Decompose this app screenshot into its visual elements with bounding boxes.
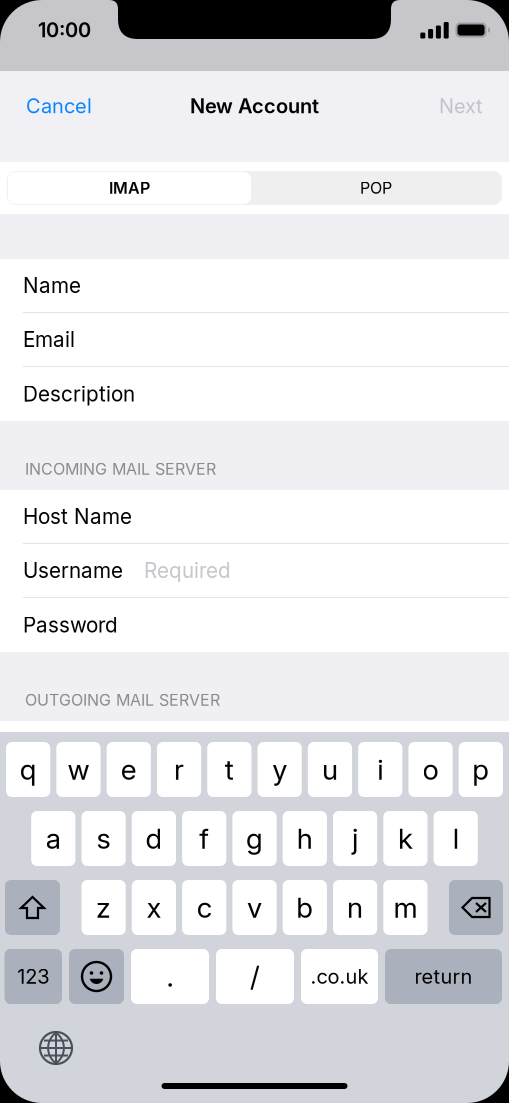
button[interactable]: p	[459, 742, 503, 797]
staticText: l	[453, 822, 459, 855]
button[interactable]: f	[182, 811, 226, 866]
staticText: Username	[23, 558, 123, 583]
button[interactable]: v	[232, 880, 277, 935]
button[interactable]: j	[333, 811, 377, 866]
staticText: u	[322, 753, 338, 786]
button[interactable]: m	[383, 880, 427, 935]
staticText: .	[166, 960, 173, 993]
staticText: p	[472, 753, 489, 786]
staticText: New Account	[190, 94, 319, 118]
button[interactable]: IMAP	[8, 172, 251, 204]
button[interactable]: Name	[0, 259, 509, 313]
button[interactable]: u	[308, 742, 352, 797]
staticText: b	[296, 891, 313, 924]
button[interactable]: Cancel	[14, 84, 104, 128]
staticText: Cancel	[26, 94, 92, 118]
staticText: m	[393, 891, 417, 924]
button[interactable]: d	[132, 811, 176, 866]
button[interactable]: 123	[4, 949, 62, 1004]
button[interactable]: return	[385, 949, 502, 1004]
staticText: r	[174, 753, 184, 786]
staticText: d	[145, 822, 162, 855]
staticText: a	[46, 822, 61, 855]
button[interactable]: q	[6, 742, 50, 797]
staticText: j	[352, 822, 358, 855]
button[interactable]: s	[81, 811, 126, 866]
staticText: x	[146, 891, 161, 924]
staticText: Password	[23, 612, 118, 637]
button[interactable]: z	[81, 880, 126, 935]
button[interactable]: Password	[0, 598, 509, 652]
button[interactable]: k	[383, 811, 427, 866]
button[interactable]: Delete	[449, 880, 503, 935]
button[interactable]: /	[216, 949, 294, 1004]
button[interactable]: e	[107, 742, 151, 797]
staticText: Email	[23, 327, 75, 352]
button[interactable]: Next	[427, 84, 495, 128]
staticText: s	[97, 822, 111, 855]
staticText: Next	[439, 94, 483, 118]
staticText: k	[398, 822, 413, 855]
staticText: INCOMING MAIL SERVER	[25, 459, 216, 479]
button[interactable]: x	[132, 880, 176, 935]
staticText: g	[246, 822, 263, 855]
staticText: IMAP	[109, 178, 150, 198]
staticText: y	[272, 753, 287, 786]
button[interactable]: n	[333, 880, 377, 935]
staticText: o	[423, 753, 439, 786]
button[interactable]: POP	[251, 172, 501, 204]
button[interactable]: .	[131, 949, 209, 1004]
staticText: Required	[144, 558, 231, 583]
staticText: return	[414, 964, 472, 989]
staticText: i	[377, 753, 383, 786]
button[interactable]: g	[232, 811, 277, 866]
staticText: Name	[23, 273, 81, 298]
staticText: Description	[23, 381, 135, 406]
button[interactable]: Emoji	[69, 949, 124, 1004]
staticText: POP	[360, 178, 392, 198]
staticText: OUTGOING MAIL SERVER	[25, 690, 220, 710]
button[interactable]: Email	[0, 313, 509, 367]
button[interactable]: Shift	[5, 880, 60, 935]
button[interactable]: Next keyboard	[34, 1026, 78, 1070]
staticText: q	[20, 753, 37, 786]
button[interactable]: o	[408, 742, 453, 797]
staticText: w	[67, 753, 89, 786]
button[interactable]: .co.uk	[301, 949, 378, 1004]
staticText: /	[250, 960, 260, 993]
button[interactable]: h	[283, 811, 327, 866]
staticText: Host Name	[23, 504, 132, 529]
button[interactable]: Host Name	[0, 490, 509, 544]
button[interactable]: l	[434, 811, 478, 866]
staticText: n	[347, 891, 363, 924]
staticText: 123	[17, 964, 49, 989]
button[interactable]: i	[358, 742, 402, 797]
staticText: 10:00	[38, 18, 91, 42]
staticText: t	[225, 753, 234, 786]
button[interactable]: y	[258, 742, 302, 797]
button[interactable]: Description	[0, 367, 509, 421]
staticText: .co.uk	[310, 964, 368, 989]
staticText: f	[199, 822, 209, 855]
staticText: e	[121, 753, 137, 786]
button[interactable]: w	[56, 742, 101, 797]
button[interactable]: Username	[0, 544, 509, 598]
button[interactable]: b	[283, 880, 327, 935]
staticText: z	[96, 891, 111, 924]
staticText: c	[197, 891, 212, 924]
button[interactable]: r	[157, 742, 201, 797]
button[interactable]: t	[207, 742, 251, 797]
button[interactable]: a	[31, 811, 75, 866]
staticText: v	[247, 891, 262, 924]
button[interactable]: c	[182, 880, 226, 935]
staticText: h	[297, 822, 313, 855]
